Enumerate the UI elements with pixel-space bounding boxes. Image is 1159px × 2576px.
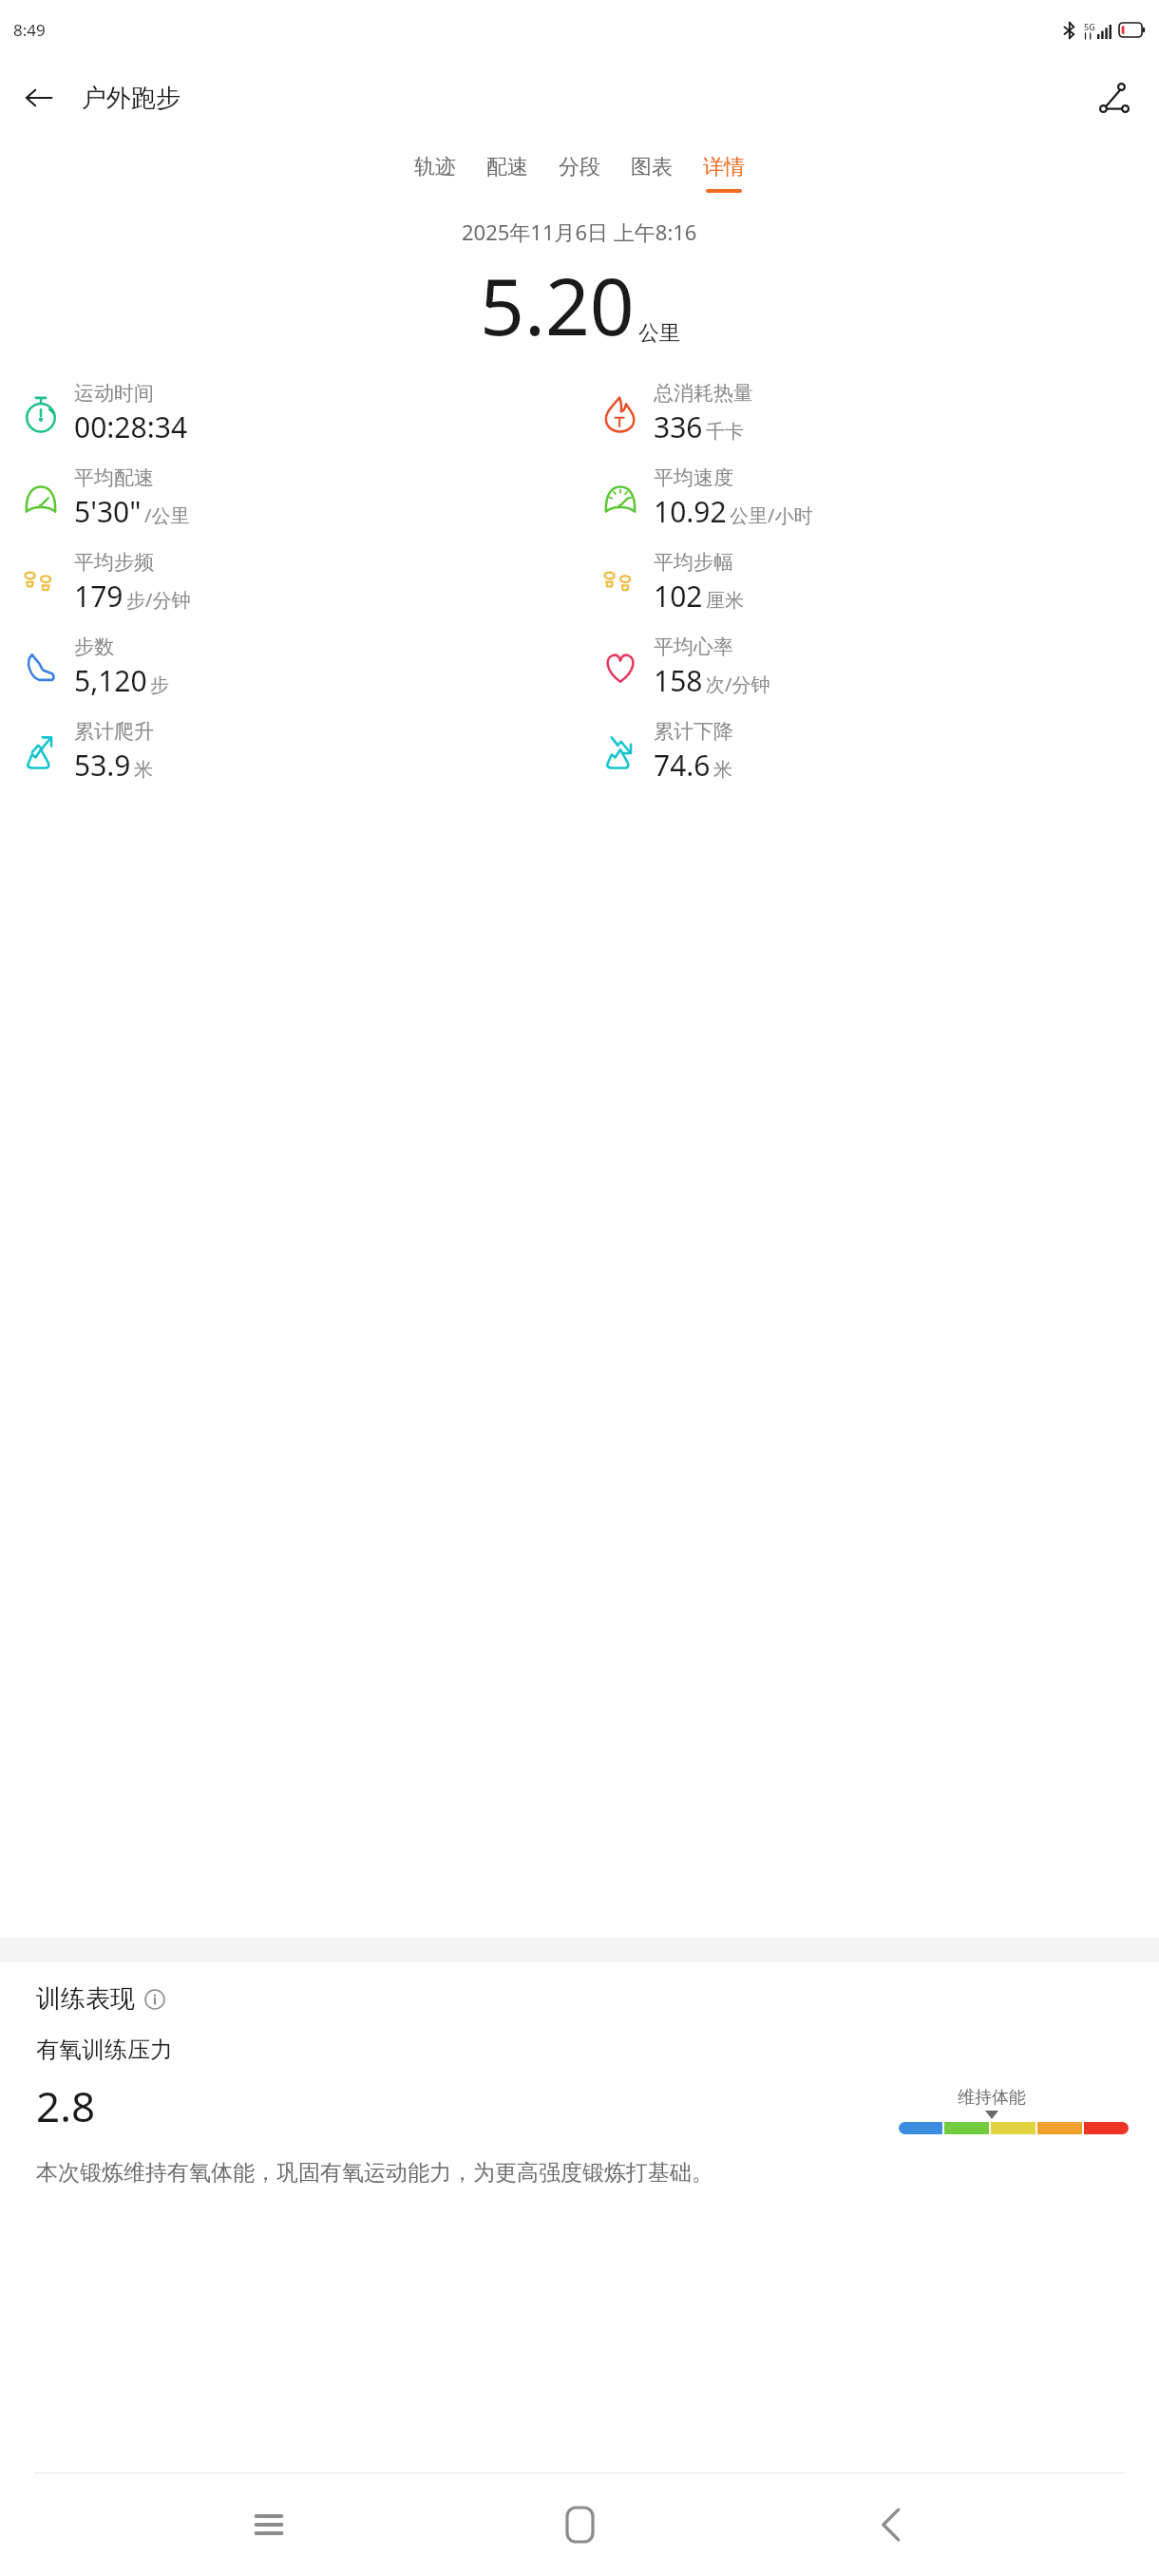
button[interactable]: 平均配速 [0,456,579,540]
staticText: 步数 [74,635,114,659]
staticText: 步/分钟 [126,587,191,613]
button[interactable]: 运动时间 [0,371,579,456]
button[interactable]: 配速 [471,150,543,197]
staticText: 2025年11月6日 上午8:16 [462,218,697,246]
staticText: 累计下降 [654,719,733,744]
staticText: 图表 [631,154,673,180]
staticText: /公里 [144,502,190,528]
staticText: 累计爬升 [74,719,154,744]
button[interactable]: 平均心率 [579,625,1159,710]
staticText: 训练表现 [36,1983,135,2015]
staticText: 74.6 [654,746,711,785]
staticText: 平均步频 [74,550,154,575]
staticText: 2.8 [36,2077,96,2134]
staticText: 厘米 [706,589,744,613]
staticText: 维持体能 [958,2087,1026,2109]
staticText: 运动时间 [74,381,154,406]
other: Info [144,1989,165,2010]
staticText: 5,120 [74,661,147,700]
staticText: 分段 [559,154,600,180]
button[interactable]: 图表 [616,150,688,197]
staticText: 平均步幅 [654,550,733,575]
staticText: 00:28:34 [74,407,188,446]
button[interactable]: 步数 [0,625,579,710]
staticText: 平均配速 [74,465,154,490]
staticText: 米 [713,758,732,782]
staticText: 详情 [703,154,745,180]
button[interactable]: 累计爬升 [0,710,579,794]
staticText: 公里 [638,320,680,347]
staticText: 179 [74,577,123,616]
staticText: 336 [654,407,703,446]
staticText: 总消耗热量 [654,381,753,406]
staticText: 5G [1084,21,1095,32]
staticText: 米 [134,758,153,782]
staticText: 户外跑步 [82,83,180,114]
button[interactable]: 详情 [688,150,760,197]
button[interactable]: Back [848,2482,934,2567]
staticText: 配速 [486,154,528,180]
staticText: 102 [654,577,703,616]
staticText: 步 [150,673,169,697]
staticText: 有氧训练压力 [36,2036,173,2064]
staticText: 5'30" [74,492,142,531]
staticText: 本次锻炼维持有氧体能，巩固有氧运动能力，为更高强度锻炼打基础。 [36,2159,713,2187]
staticText: 平均心率 [654,635,733,659]
staticText: 次/分钟 [706,672,770,697]
staticText: 5.20 [480,252,635,358]
staticText: 10.92 [654,492,727,531]
staticText: 公里/小时 [730,502,813,528]
button[interactable]: Share [1085,68,1144,127]
staticText: 53.9 [74,746,131,785]
staticText: 千卡 [706,420,744,444]
button[interactable]: Home [537,2482,622,2567]
button[interactable]: 平均步幅 [579,540,1159,625]
staticText: 轨迹 [414,154,456,180]
staticText: 平均速度 [654,465,733,490]
button[interactable]: 训练表现 [36,1983,165,2015]
button[interactable]: 总消耗热量 [579,371,1159,456]
button[interactable]: Recents [226,2482,312,2567]
staticText: 158 [654,661,703,700]
button[interactable]: 轨迹 [399,150,471,197]
button[interactable]: 分段 [543,150,616,197]
button[interactable]: Back [9,68,68,127]
button[interactable]: 平均步频 [0,540,579,625]
staticText: 8:49 [13,19,46,41]
button[interactable]: 累计下降 [579,710,1159,794]
button[interactable]: 平均速度 [579,456,1159,540]
